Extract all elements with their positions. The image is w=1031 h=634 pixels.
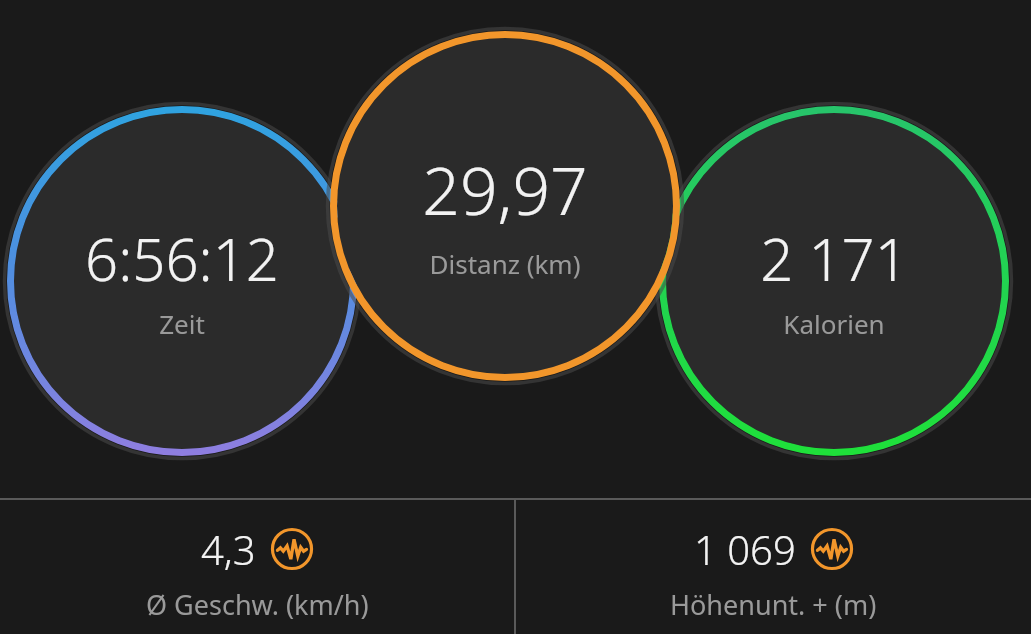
staticText: Ø Geschw. (km/h) [146,586,369,623]
staticText: Distanz (km) [340,246,670,281]
other: Activity metric [810,527,854,571]
button[interactable]: 1 069 [516,500,1031,634]
staticText: 2 171 [669,219,999,298]
staticText: Höhenunt. + (m) [670,586,877,623]
staticText: Zeit [17,306,347,341]
staticText: 4,3 [201,522,256,576]
button[interactable]: 4,3 [0,500,514,634]
button[interactable]: 29,97 [340,144,670,281]
staticText: 6:56:12 [17,219,347,298]
staticText: 29,97 [340,144,670,234]
button[interactable]: 2 171 [669,219,999,341]
staticText: Kalorien [669,306,999,341]
other: Activity metric [270,527,314,571]
staticText: 1 069 [694,522,796,576]
button[interactable]: 6:56:12 [17,219,347,341]
